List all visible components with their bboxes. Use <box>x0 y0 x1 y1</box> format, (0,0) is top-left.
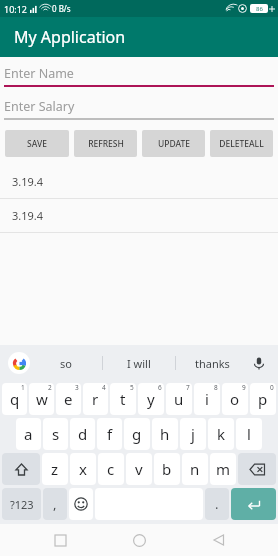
button[interactable]: 3.19.4 <box>0 199 278 233</box>
staticText: 6 <box>158 383 162 392</box>
button[interactable]: thanks <box>176 345 248 381</box>
button[interactable]: k <box>208 418 234 450</box>
staticText: My Application <box>14 26 126 48</box>
button[interactable]: p <box>250 383 276 415</box>
staticText: SAVE <box>27 138 47 150</box>
button[interactable]: Home <box>119 524 159 556</box>
button[interactable]: r <box>83 383 108 415</box>
button[interactable]: m <box>210 453 236 485</box>
staticText: so <box>60 356 72 371</box>
staticText: I will <box>127 356 151 371</box>
staticText: y <box>147 389 155 409</box>
staticText: r <box>92 389 99 409</box>
staticText: t <box>120 389 126 409</box>
staticText: i <box>205 389 209 409</box>
button[interactable]: w <box>29 383 54 415</box>
button[interactable]: u <box>166 383 192 415</box>
button[interactable]: j <box>180 418 206 450</box>
staticText: 2 <box>48 383 52 392</box>
button[interactable]: Recents <box>40 524 80 556</box>
staticText: 86 <box>256 5 263 13</box>
button[interactable]: Emoji <box>69 488 93 520</box>
button[interactable]: l <box>236 418 262 450</box>
staticText: 5 <box>130 383 134 392</box>
staticText: e <box>64 389 73 409</box>
staticText: DELETEALL <box>219 138 264 150</box>
staticText: UPDATE <box>158 138 190 150</box>
staticText: 4 <box>102 383 106 392</box>
button[interactable]: , <box>43 488 67 520</box>
button[interactable]: SAVE <box>5 130 69 157</box>
staticText: g <box>132 424 142 444</box>
staticText: REFRESH <box>88 138 124 150</box>
button[interactable]: x <box>70 453 96 485</box>
staticText: k <box>217 424 226 444</box>
button[interactable]: i <box>194 383 220 415</box>
staticText: Enter Name <box>4 65 74 82</box>
staticText: f <box>107 424 113 444</box>
staticText: h <box>160 424 170 444</box>
staticText: Enter Salary <box>4 98 75 115</box>
button[interactable]: h <box>152 418 178 450</box>
staticText: 7 <box>186 383 190 392</box>
button[interactable]: Back <box>199 524 239 556</box>
staticText: v <box>135 459 143 479</box>
staticText: u <box>174 389 184 409</box>
staticText: x <box>79 459 87 479</box>
button[interactable]: g <box>124 418 150 450</box>
button[interactable]: DELETEALL <box>210 130 273 157</box>
staticText: a <box>24 424 33 444</box>
staticText: l <box>247 424 251 444</box>
button[interactable]: a <box>16 418 41 450</box>
staticText: 3.19.4 <box>12 208 44 223</box>
staticText: p <box>258 389 268 409</box>
staticText: o <box>230 389 240 409</box>
button[interactable]: . <box>205 488 229 520</box>
button[interactable]: q <box>2 383 27 415</box>
button[interactable]: c <box>98 453 124 485</box>
button[interactable]: Enter <box>231 488 276 520</box>
button[interactable]: 3.19.4 <box>0 165 278 199</box>
button[interactable]: Backspace <box>238 453 276 485</box>
staticText: 8 <box>214 383 218 392</box>
button[interactable]: I will <box>103 345 175 381</box>
staticText: c <box>107 459 115 479</box>
button[interactable]: Google <box>8 352 30 374</box>
button[interactable]: Shift <box>2 453 40 485</box>
button[interactable]: UPDATE <box>142 130 205 157</box>
staticText: thanks <box>195 356 230 371</box>
button[interactable]: v <box>126 453 152 485</box>
staticText: m <box>216 459 231 479</box>
button[interactable]: ?123 <box>2 488 41 520</box>
button[interactable]: so <box>30 345 102 381</box>
button[interactable]: y <box>138 383 164 415</box>
staticText: s <box>52 424 60 444</box>
staticText: 1 <box>21 383 25 392</box>
staticText: ?123 <box>10 497 34 512</box>
staticText: j <box>191 424 195 444</box>
button[interactable]: d <box>70 418 95 450</box>
button[interactable]: s <box>43 418 68 450</box>
staticText: b <box>162 459 172 479</box>
button[interactable]: o <box>222 383 248 415</box>
button[interactable]: REFRESH <box>74 130 137 157</box>
staticText: , <box>53 495 57 513</box>
button[interactable]: b <box>154 453 180 485</box>
button[interactable]: f <box>97 418 122 450</box>
button[interactable]: e <box>56 383 81 415</box>
button[interactable]: Voice input <box>248 345 270 381</box>
staticText: n <box>190 459 200 479</box>
button[interactable]: n <box>182 453 208 485</box>
staticText: 9 <box>242 383 246 392</box>
staticText: 3.19.4 <box>12 174 44 189</box>
staticText: 0 <box>270 383 274 392</box>
button[interactable]: t <box>110 383 136 415</box>
staticText: d <box>78 424 88 444</box>
staticText: q <box>10 389 20 409</box>
staticText: . <box>215 495 219 513</box>
staticText: z <box>51 459 59 479</box>
staticText: 10:12 <box>4 3 28 15</box>
button[interactable]: z <box>42 453 68 485</box>
staticText: 3 <box>75 383 79 392</box>
